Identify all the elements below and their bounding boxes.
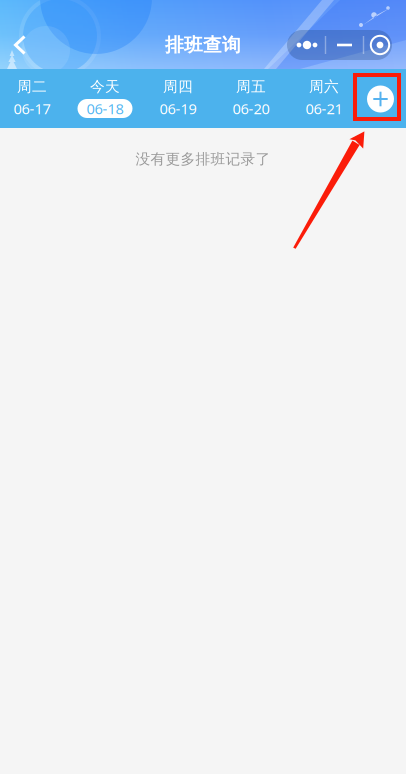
staticText: 06-17 bbox=[13, 99, 50, 118]
staticText: 06-18 bbox=[86, 99, 123, 118]
button[interactable]: 今天 bbox=[68, 69, 141, 128]
staticText: 06-19 bbox=[159, 99, 196, 118]
button[interactable]: Add bbox=[360, 69, 406, 128]
staticText: 排班查询 bbox=[165, 33, 241, 56]
staticText: 今天 bbox=[90, 77, 120, 95]
staticText: 周六 bbox=[309, 77, 339, 95]
staticText: 周四 bbox=[163, 77, 193, 95]
staticText: 没有更多排班记录了 bbox=[135, 150, 270, 168]
button[interactable]: 周六 bbox=[287, 69, 360, 128]
button[interactable]: 周五 bbox=[214, 69, 287, 128]
staticText: 06-21 bbox=[305, 99, 342, 118]
staticText: 周五 bbox=[236, 77, 266, 95]
staticText: 周二 bbox=[17, 77, 47, 95]
button[interactable]: 周二 bbox=[0, 69, 68, 128]
button[interactable]: 周四 bbox=[141, 69, 214, 128]
button[interactable]: Back bbox=[0, 28, 40, 62]
staticText: 06-20 bbox=[232, 99, 269, 118]
